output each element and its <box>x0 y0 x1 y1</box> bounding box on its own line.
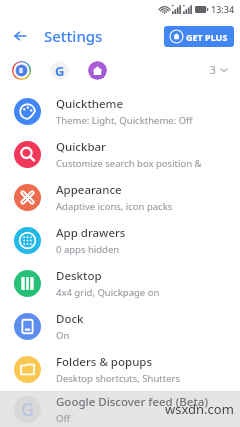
button[interactable]: Profile one <box>12 61 31 80</box>
staticText: Appearance <box>56 182 122 198</box>
staticText: Adaptive icons, icon packs <box>56 200 173 213</box>
staticText: Dock <box>56 311 84 327</box>
button[interactable]: Google Discover feed (Beta) <box>0 391 240 427</box>
button[interactable]: Google <box>50 61 69 80</box>
button[interactable]: App drawers <box>0 219 240 262</box>
staticText: 8 <box>19 66 24 76</box>
staticText: G <box>21 397 35 422</box>
staticText: 13:34 <box>211 3 235 15</box>
staticText: GET PLUS <box>186 31 228 43</box>
staticText: wsxdn.com <box>165 400 234 418</box>
button[interactable]: Folders & popups <box>0 348 240 391</box>
button[interactable]: Quicktheme <box>0 90 240 133</box>
staticText: App drawers <box>56 225 126 241</box>
staticText: On <box>56 329 70 342</box>
staticText: 3 <box>210 63 216 77</box>
button[interactable]: Dock <box>0 305 240 348</box>
staticText: Desktop <box>56 268 102 284</box>
button[interactable]: Home profile <box>88 61 107 80</box>
staticText: Customize search box position & shortcut… <box>56 157 240 170</box>
staticText: Settings <box>44 26 103 46</box>
staticText: G <box>55 62 65 80</box>
button[interactable]: 3 <box>208 61 230 79</box>
staticText: 4x4 grid, Quickpage on <box>56 286 160 299</box>
button[interactable]: Back <box>7 23 33 49</box>
button[interactable]: Desktop <box>0 262 240 305</box>
staticText: 0 apps hidden <box>56 243 120 256</box>
staticText: Folders & popups <box>56 354 153 370</box>
staticText: Quickbar <box>56 139 106 155</box>
staticText: Google Discover feed (Beta) <box>56 394 209 410</box>
staticText: Theme: Light, Quicktheme: Off <box>56 114 193 127</box>
staticText: Off <box>56 412 70 425</box>
staticText: Quicktheme <box>56 96 124 112</box>
button[interactable]: Appearance <box>0 176 240 219</box>
staticText: Desktop shortcuts, Shutters <box>56 372 181 385</box>
button[interactable]: Quickbar <box>0 133 240 176</box>
button[interactable]: GET PLUS <box>164 26 234 47</box>
